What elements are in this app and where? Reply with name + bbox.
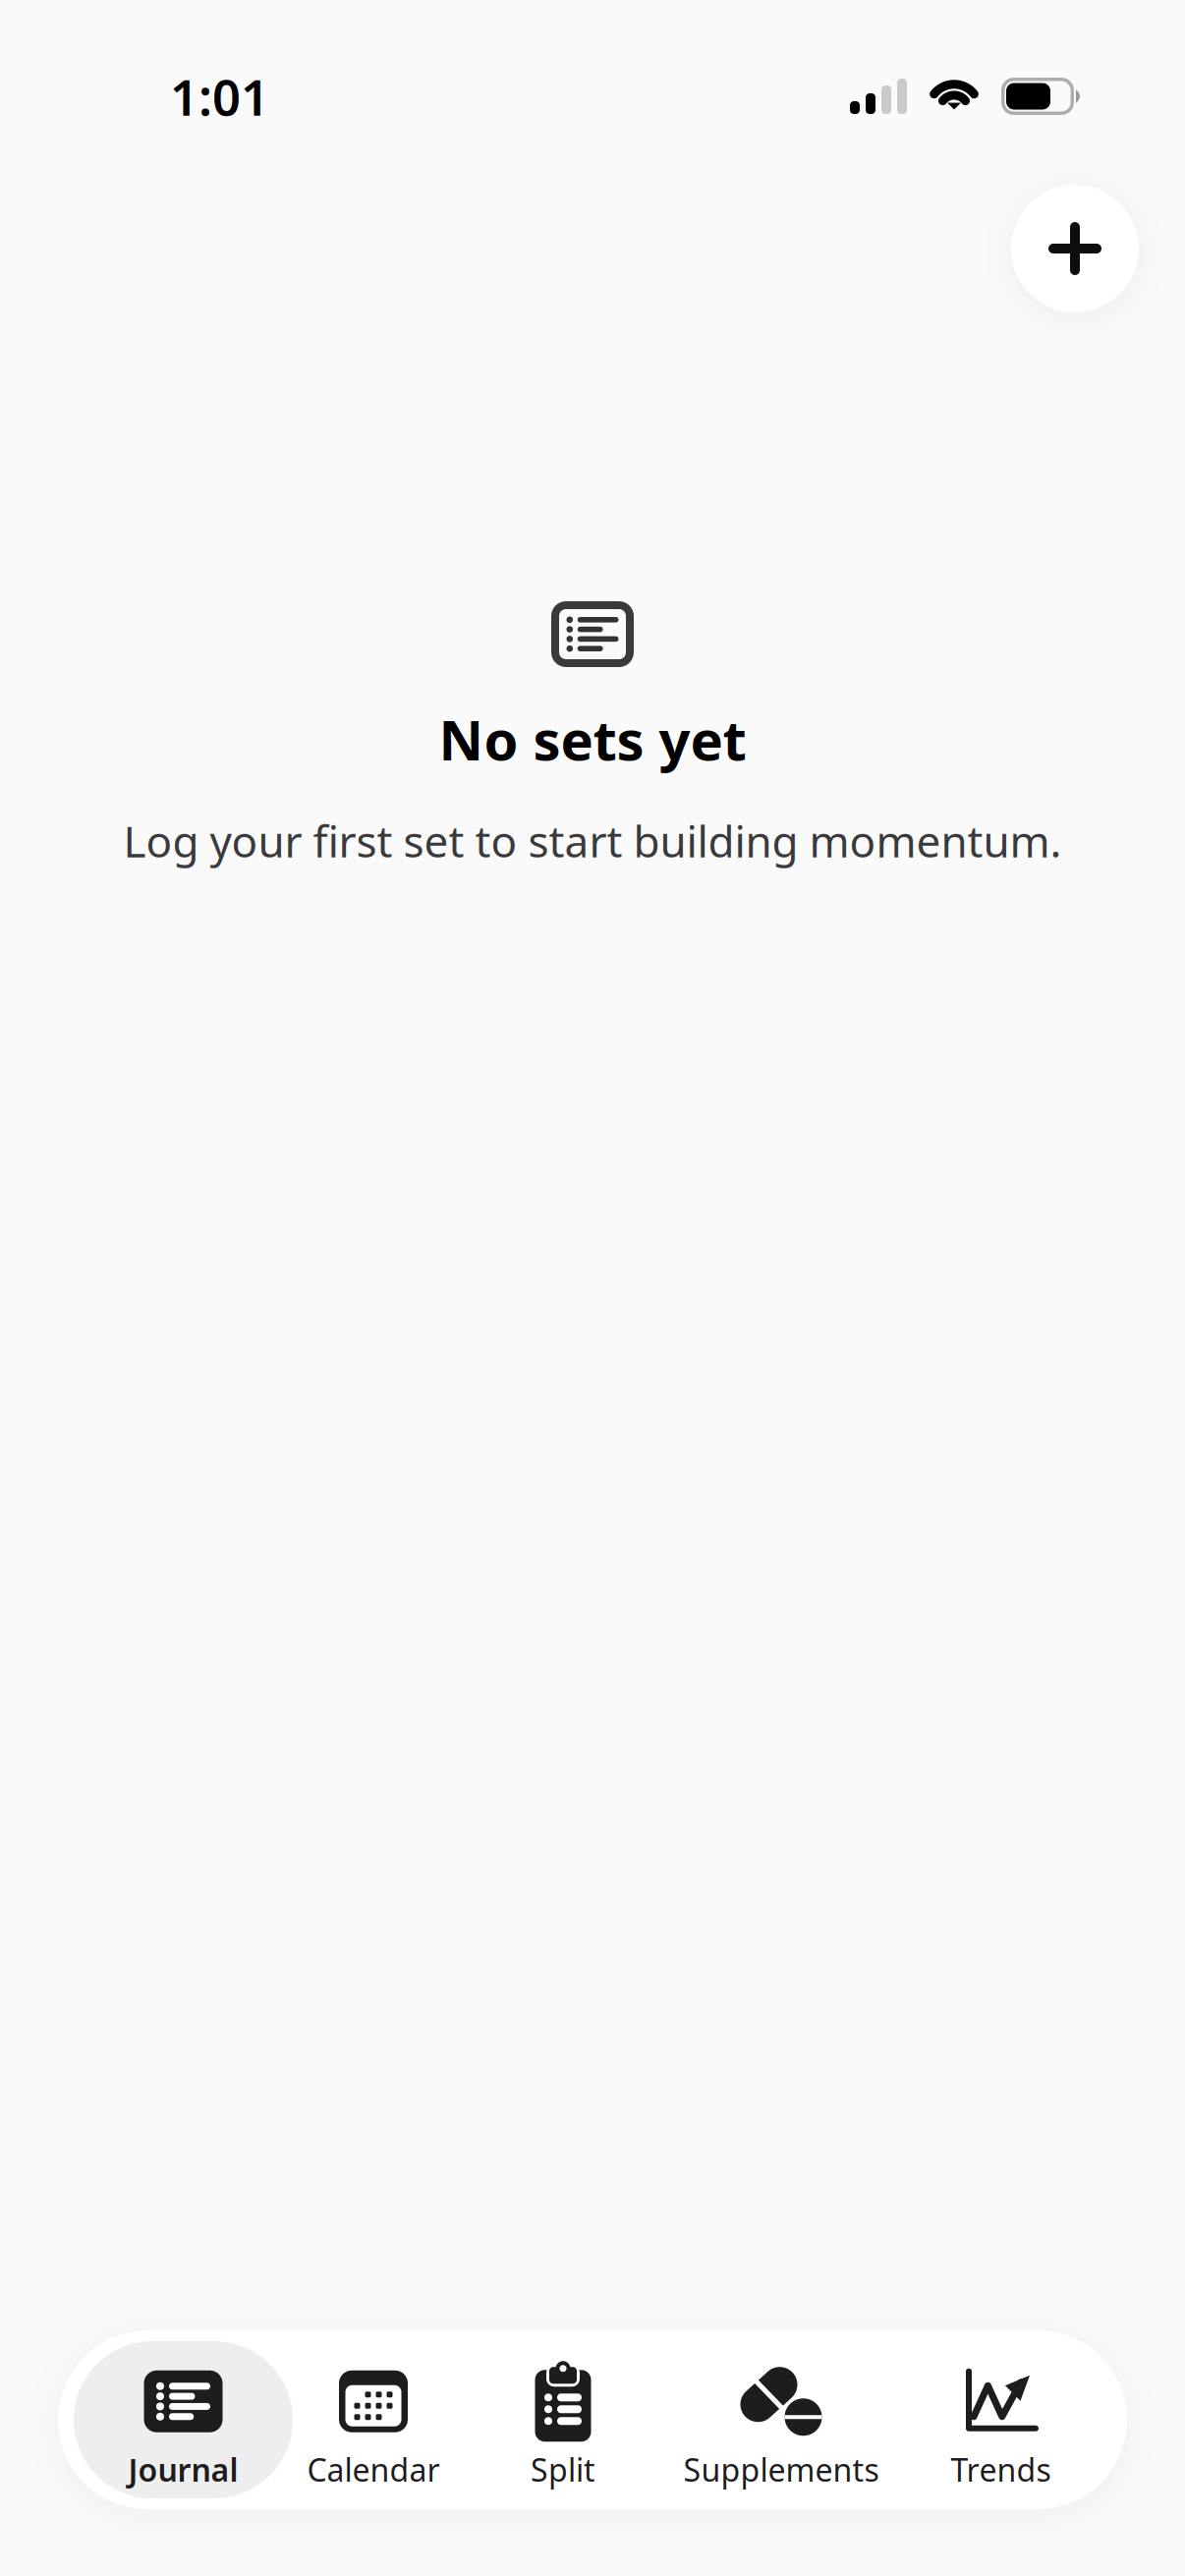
- staticText: 1:01: [170, 63, 269, 129]
- staticText: Split: [531, 2449, 595, 2490]
- staticText: No sets yet: [439, 702, 746, 776]
- staticText: Journal: [128, 2449, 238, 2490]
- staticText: Log your first set to start building mom…: [123, 812, 1062, 869]
- button[interactable]: Calendar: [293, 2341, 454, 2498]
- button[interactable]: Add set: [1011, 185, 1139, 312]
- button[interactable]: Split: [454, 2341, 672, 2498]
- button[interactable]: Trends: [890, 2341, 1111, 2498]
- button[interactable]: Journal: [74, 2341, 293, 2498]
- staticText: Supplements: [683, 2449, 879, 2490]
- button[interactable]: Supplements: [672, 2341, 890, 2498]
- staticText: Trends: [951, 2449, 1051, 2490]
- staticText: Calendar: [307, 2449, 440, 2490]
